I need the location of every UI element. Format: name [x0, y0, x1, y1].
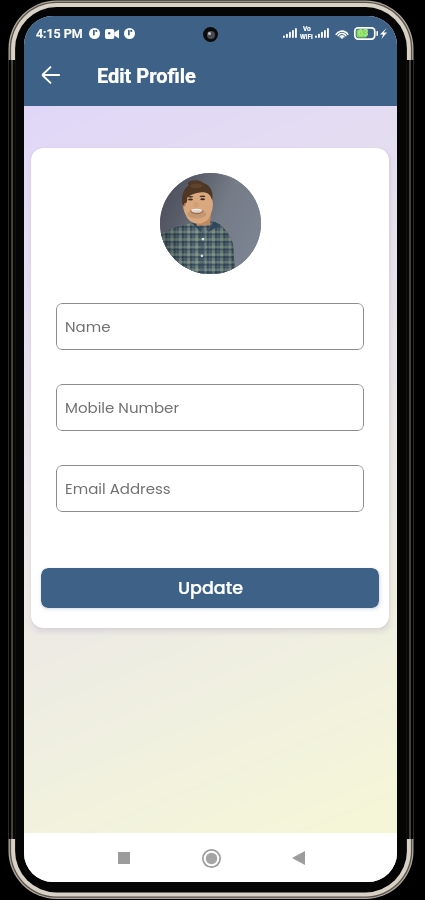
button[interactable]: Home [187, 834, 235, 882]
button[interactable]: Back [274, 834, 322, 882]
button[interactable]: Update [41, 568, 379, 608]
staticText: Update [178, 576, 243, 601]
button[interactable]: Recent apps [100, 834, 148, 882]
staticText: Mobile Number [65, 397, 179, 418]
staticText: Name [65, 316, 111, 337]
button[interactable]: Email Address [56, 465, 364, 512]
staticText: Edit Profile [97, 64, 196, 87]
button[interactable]: Mobile Number [56, 384, 364, 431]
button[interactable]: Back [30, 54, 72, 96]
staticText: Email Address [65, 478, 171, 499]
button[interactable]: Name [56, 303, 364, 350]
staticText: Vo [303, 25, 311, 33]
staticText: 4:15 PM [36, 26, 83, 41]
staticText: WiFi [300, 33, 313, 41]
staticText: 63 [358, 28, 369, 39]
